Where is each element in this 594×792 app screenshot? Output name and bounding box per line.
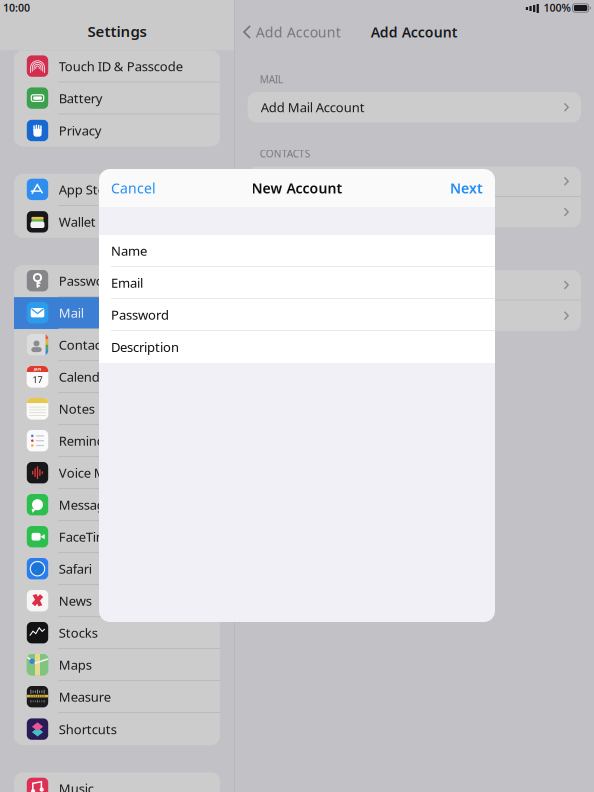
staticText: Privacy bbox=[59, 122, 102, 139]
staticText: News bbox=[59, 592, 92, 609]
button[interactable]: iCloud bbox=[248, 270, 581, 301]
staticText: Reminders bbox=[59, 432, 123, 449]
button[interactable]: Contacts bbox=[14, 329, 220, 361]
staticText: Name bbox=[111, 242, 147, 259]
staticText: Measure bbox=[59, 688, 111, 705]
button[interactable]: Measure bbox=[14, 681, 220, 713]
button[interactable]: Email bbox=[99, 267, 495, 299]
button[interactable]: Battery bbox=[14, 82, 220, 114]
button[interactable]: Name bbox=[99, 235, 495, 267]
button[interactable]: iCloud bbox=[248, 166, 581, 197]
button[interactable]: Add Account bbox=[235, 19, 341, 44]
button[interactable]: Touch ID & Passcode bbox=[14, 50, 220, 82]
button[interactable]: Shortcuts bbox=[14, 713, 220, 745]
button[interactable]: Next bbox=[438, 169, 495, 207]
staticText: Add Account bbox=[261, 203, 337, 221]
button[interactable]: JAN bbox=[14, 361, 220, 393]
staticText: Contacts bbox=[59, 336, 112, 353]
staticText: Stocks bbox=[59, 624, 98, 641]
button[interactable]: Voice Memos bbox=[14, 457, 220, 489]
staticText: Settings bbox=[87, 21, 146, 41]
staticText: Wallet & Apple Pay bbox=[59, 213, 171, 231]
staticText: Mail bbox=[59, 304, 84, 321]
button[interactable]: Messages bbox=[14, 489, 220, 521]
staticText: Maps bbox=[59, 656, 92, 673]
button[interactable]: Stocks bbox=[14, 617, 220, 649]
button[interactable]: Music bbox=[14, 772, 220, 792]
staticText: Passwords bbox=[59, 272, 123, 289]
staticText: Shortcuts bbox=[59, 720, 117, 738]
staticText: Safari bbox=[59, 560, 92, 577]
button[interactable]: Notes bbox=[14, 393, 220, 425]
button[interactable]: Safari bbox=[14, 553, 220, 585]
button[interactable]: App Store bbox=[14, 174, 220, 206]
button[interactable]: Maps bbox=[14, 649, 220, 681]
staticText: Add Account bbox=[371, 22, 458, 41]
button[interactable]: Mail bbox=[14, 297, 220, 329]
button[interactable]: Cancel bbox=[99, 169, 168, 207]
staticText: Password bbox=[111, 306, 169, 323]
staticText: JAN bbox=[34, 366, 41, 372]
staticText: Next bbox=[450, 178, 483, 198]
staticText: Description bbox=[111, 338, 179, 356]
staticText: Cancel bbox=[111, 178, 156, 198]
staticText: Add Mail Account bbox=[261, 98, 365, 116]
staticText: MAIL bbox=[260, 72, 283, 86]
staticText: Voice Memos bbox=[59, 464, 139, 481]
button[interactable]: Passwords bbox=[14, 265, 220, 297]
button[interactable]: Add Account bbox=[248, 301, 581, 331]
button[interactable]: Privacy bbox=[14, 114, 220, 146]
button[interactable]: Reminders bbox=[14, 425, 220, 457]
button[interactable]: News bbox=[14, 585, 220, 617]
staticText: Add Account bbox=[256, 22, 341, 41]
staticText: Email bbox=[111, 274, 143, 291]
button[interactable]: Add Account bbox=[248, 197, 581, 227]
staticText: App Store bbox=[59, 180, 118, 198]
staticText: CONTACTS bbox=[260, 147, 310, 160]
staticText: Battery bbox=[59, 89, 103, 107]
staticText: Messages bbox=[59, 496, 118, 513]
button[interactable]: FaceTime bbox=[14, 521, 220, 553]
staticText: 10:00 bbox=[3, 0, 30, 15]
button[interactable]: Add Mail Account bbox=[248, 92, 581, 122]
staticText: FaceTime bbox=[59, 528, 115, 545]
staticText: Music bbox=[59, 779, 94, 792]
button[interactable]: Password bbox=[99, 299, 495, 331]
button[interactable]: Description bbox=[99, 331, 495, 363]
staticText: iCloud bbox=[261, 172, 299, 190]
staticText: Touch ID & Passcode bbox=[59, 57, 183, 75]
staticText: New Account bbox=[251, 178, 342, 198]
button[interactable]: Wallet & Apple Pay bbox=[14, 206, 220, 238]
staticText: Notes bbox=[59, 400, 95, 417]
staticText: Calendar bbox=[59, 368, 112, 385]
staticText: 100% bbox=[544, 0, 571, 15]
staticText: 17 bbox=[32, 374, 42, 386]
